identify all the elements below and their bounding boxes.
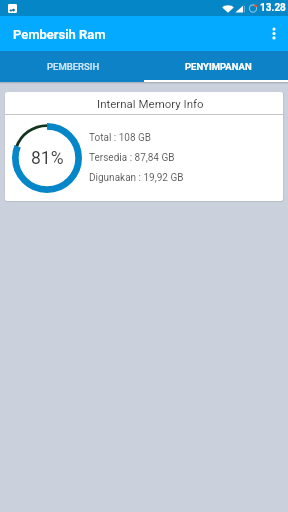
button[interactable]: PENYIMPANAN bbox=[144, 51, 288, 82]
staticText: PEMBERSIH bbox=[47, 61, 100, 72]
staticText: PENYIMPANAN bbox=[185, 61, 252, 72]
staticText: Tersedia : 87,84 GB bbox=[89, 152, 175, 164]
staticText: Pembersih Ram bbox=[13, 27, 106, 42]
staticText: Internal Memory Info bbox=[97, 97, 204, 110]
button[interactable]: More options bbox=[260, 16, 288, 51]
staticText: Total : 108 GB bbox=[89, 132, 152, 144]
staticText: 81% bbox=[31, 148, 64, 169]
staticText: 13.28 bbox=[260, 2, 286, 14]
staticText: Digunakan : 19,92 GB bbox=[89, 172, 184, 184]
button[interactable]: PEMBERSIH bbox=[0, 51, 144, 82]
